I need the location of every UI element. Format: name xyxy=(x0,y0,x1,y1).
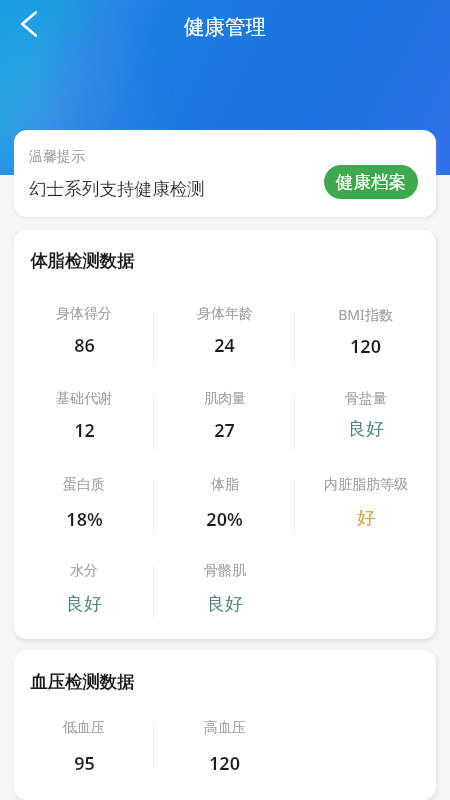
staticText: 健康档案 xyxy=(336,171,406,193)
staticText: 骨盐量 xyxy=(345,390,387,408)
staticText: 良好 xyxy=(66,593,102,616)
staticText: 高血压 xyxy=(204,719,246,737)
staticText: 27 xyxy=(214,418,235,443)
staticText: 120 xyxy=(350,334,381,359)
staticText: 血压检测数据 xyxy=(30,671,135,693)
staticText: 良好 xyxy=(207,593,243,616)
staticText: 18% xyxy=(66,507,103,532)
staticText: 身体得分 xyxy=(56,305,112,323)
button[interactable]: 健康档案 xyxy=(324,165,418,199)
staticText: BMI指数 xyxy=(338,305,393,324)
staticText: 12 xyxy=(74,418,95,443)
staticText: 20% xyxy=(206,507,243,532)
staticText: 内脏脂肪等级 xyxy=(324,476,408,494)
staticText: 24 xyxy=(214,333,235,358)
staticText: 温馨提示 xyxy=(29,148,85,166)
staticText: 良好 xyxy=(348,418,384,441)
staticText: 身体年龄 xyxy=(197,305,253,323)
staticText: 体脂 xyxy=(211,476,239,494)
staticText: 体脂检测数据 xyxy=(30,250,135,272)
staticText: 86 xyxy=(74,333,95,358)
staticText: 蛋白质 xyxy=(63,476,105,494)
staticText: 幻士系列支持健康检测 xyxy=(29,178,205,200)
staticText: 低血压 xyxy=(63,719,105,737)
staticText: 健康管理 xyxy=(184,14,266,40)
staticText: 骨骼肌 xyxy=(204,562,246,580)
staticText: 好 xyxy=(357,507,375,530)
staticText: 肌肉量 xyxy=(204,390,246,408)
staticText: 水分 xyxy=(70,562,98,580)
staticText: 基础代谢 xyxy=(56,390,112,408)
button[interactable]: Back xyxy=(7,2,51,46)
staticText: 120 xyxy=(209,751,240,776)
staticText: 95 xyxy=(74,751,95,776)
